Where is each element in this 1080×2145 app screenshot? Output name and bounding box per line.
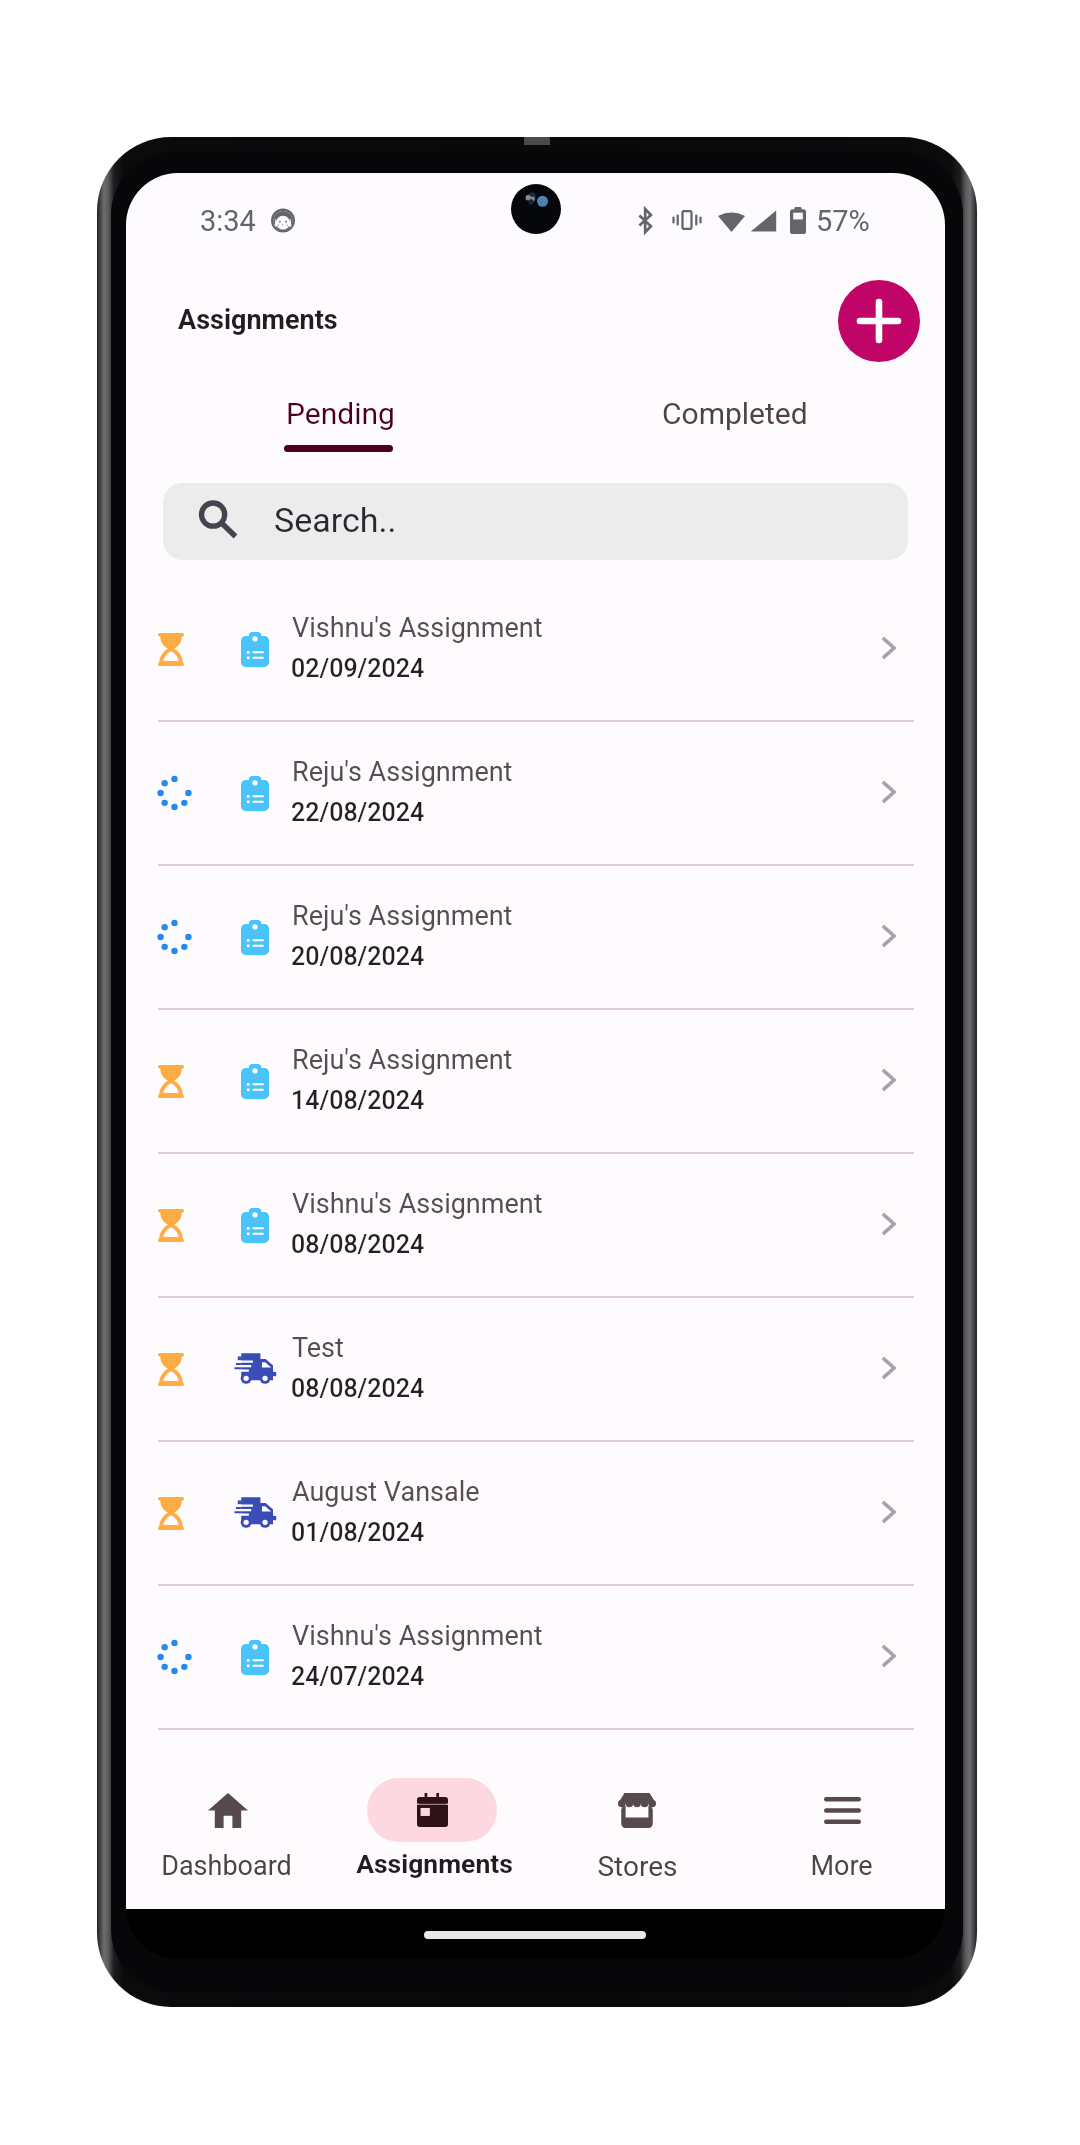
staticText: 3:34 — [200, 204, 256, 238]
button[interactable]: More — [740, 1763, 945, 1898]
staticText: Reju's Assignment — [292, 1044, 513, 1076]
button[interactable]: Reju's Assignment — [126, 865, 945, 1009]
staticText: 02/09/2024 — [291, 654, 425, 683]
staticText: 24/07/2024 — [291, 1662, 425, 1691]
staticText: 22/08/2024 — [291, 798, 425, 827]
button[interactable]: Assignments — [331, 1763, 536, 1898]
staticText: Dashboard — [161, 1850, 292, 1882]
staticText: 14/08/2024 — [291, 1086, 425, 1115]
staticText: Assignments — [178, 304, 338, 336]
button[interactable]: Add assignment — [838, 280, 920, 362]
button[interactable]: Stores — [535, 1763, 740, 1898]
staticText: Pending — [286, 396, 395, 431]
button[interactable]: Vishnu's Assignment — [126, 1585, 945, 1729]
staticText: Assignments — [356, 1848, 513, 1879]
button[interactable]: Search.. — [163, 483, 908, 560]
button[interactable]: Vishnu's Assignment — [126, 577, 945, 721]
staticText: 20/08/2024 — [291, 942, 425, 971]
staticText: 57% — [816, 204, 870, 238]
staticText: Vishnu's Assignment — [292, 1620, 543, 1652]
staticText: Stores — [597, 1850, 678, 1883]
staticText: Reju's Assignment — [292, 900, 513, 932]
button[interactable]: Completed — [535, 378, 944, 468]
staticText: August Vansale — [292, 1476, 480, 1508]
staticText: Vishnu's Assignment — [292, 612, 543, 644]
button[interactable]: Reju's Assignment — [126, 1009, 945, 1153]
staticText: Completed — [662, 396, 808, 431]
button[interactable]: Vishnu's Assignment — [126, 1153, 945, 1297]
button[interactable]: Pending — [126, 378, 535, 468]
staticText: 08/08/2024 — [291, 1230, 425, 1259]
staticText: Reju's Assignment — [292, 756, 513, 788]
button[interactable]: Dashboard — [126, 1763, 331, 1898]
staticText: Vishnu's Assignment — [292, 1188, 543, 1220]
button[interactable]: Reju's Assignment — [126, 721, 945, 865]
staticText: More — [810, 1850, 873, 1882]
button[interactable]: August Vansale — [126, 1441, 945, 1585]
button[interactable]: Test — [126, 1297, 945, 1441]
staticText: 08/08/2024 — [291, 1374, 425, 1403]
staticText: 01/08/2024 — [291, 1518, 425, 1547]
staticText: Test — [292, 1332, 344, 1364]
staticText: Search.. — [274, 500, 397, 540]
